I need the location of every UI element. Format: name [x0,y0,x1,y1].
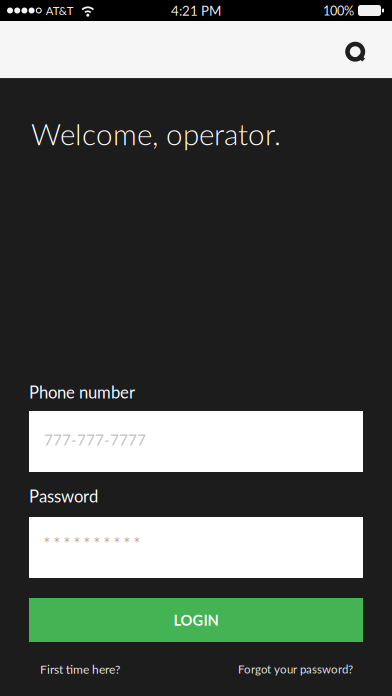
staticText: 4:21 PM [171,2,221,18]
staticText: AT&T [46,4,74,17]
staticText: 777-777-7777 [44,430,146,449]
staticText: Phone number [29,382,135,402]
staticText: Forgot your password? [238,662,353,676]
staticText: First time here? [40,662,120,676]
button[interactable]: LOGIN [29,598,363,642]
staticText: LOGIN [173,611,218,629]
button[interactable]: Phone number [29,411,363,472]
button[interactable]: First time here? [40,662,120,676]
button[interactable]: Forgot your password? [238,662,353,676]
button[interactable]: Password [29,517,363,578]
staticText: Password [29,486,98,506]
staticText: Welcome, operator. [31,116,281,151]
staticText: * * * * * * * * * * [44,535,140,549]
button[interactable]: Account [334,27,378,71]
staticText: 100% [323,3,354,18]
